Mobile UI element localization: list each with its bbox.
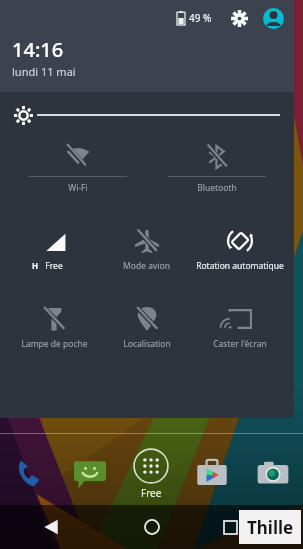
staticText: 14:16 [12,36,64,63]
staticText: Free [141,486,162,500]
button[interactable]: Phone [0,446,60,502]
staticText: Localisation [123,338,171,350]
button[interactable]: 14:16 [12,36,76,79]
button[interactable]: Messaging [60,446,120,502]
button[interactable]: Mode avion [100,222,193,300]
button[interactable]: Play Store [181,446,242,502]
staticText: Rotation automatique [196,260,284,272]
button[interactable]: Rotation automatique [193,222,286,300]
button[interactable]: Camera [242,446,303,502]
button[interactable]: Lampe de poche [8,300,100,378]
button[interactable]: Localisation [100,300,193,378]
staticText: Mode avion [123,260,170,272]
button[interactable]: User profile [263,8,284,29]
button[interactable]: Caster l'écran [193,300,286,378]
button[interactable]: Wi-Fi [18,138,137,222]
button[interactable]: Recent apps [202,505,303,549]
staticText: 49 % [189,11,212,25]
button[interactable]: Settings [228,7,250,29]
staticText: Lampe de poche [21,338,88,350]
button[interactable]: Back [0,505,101,549]
staticText: Thille [247,516,294,539]
button[interactable]: Apps [120,446,181,502]
button[interactable]: Free [8,222,100,300]
staticText: Bluetooth [197,182,237,194]
staticText: lundi 11 mai [12,64,76,79]
staticText: Free [45,260,63,272]
staticText: H [32,260,39,271]
button[interactable]: Bluetooth [157,138,276,222]
button[interactable]: Home [101,505,202,549]
staticText: Wi-Fi [68,182,88,194]
staticText: Caster l'écran [213,338,267,350]
